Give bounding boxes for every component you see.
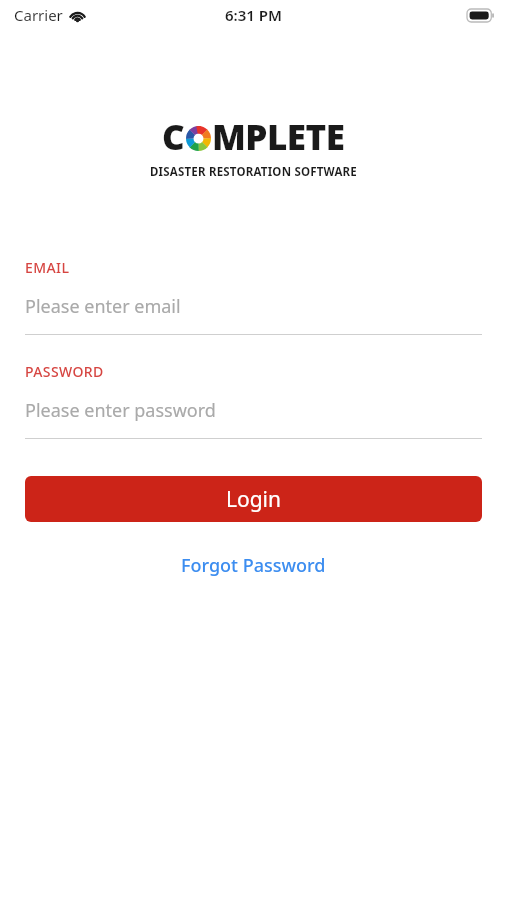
button[interactable]: PASSWORD <box>25 362 482 439</box>
button[interactable]: Login <box>25 476 482 522</box>
staticText: Carrier <box>14 5 63 25</box>
button[interactable]: EMAIL <box>25 258 482 335</box>
staticText: Login <box>226 485 282 514</box>
staticText: 6:31 PM <box>225 5 282 25</box>
staticText: C <box>162 113 185 161</box>
staticText: Please enter email <box>25 294 181 319</box>
staticText: Please enter password <box>25 398 216 423</box>
button[interactable]: Forgot Password <box>171 549 336 582</box>
staticText: MPLETE <box>212 113 345 161</box>
staticText: PASSWORD <box>25 362 104 381</box>
staticText: Forgot Password <box>181 553 326 578</box>
staticText: DISASTER RESTORATION SOFTWARE <box>150 164 357 180</box>
staticText: EMAIL <box>25 258 70 277</box>
